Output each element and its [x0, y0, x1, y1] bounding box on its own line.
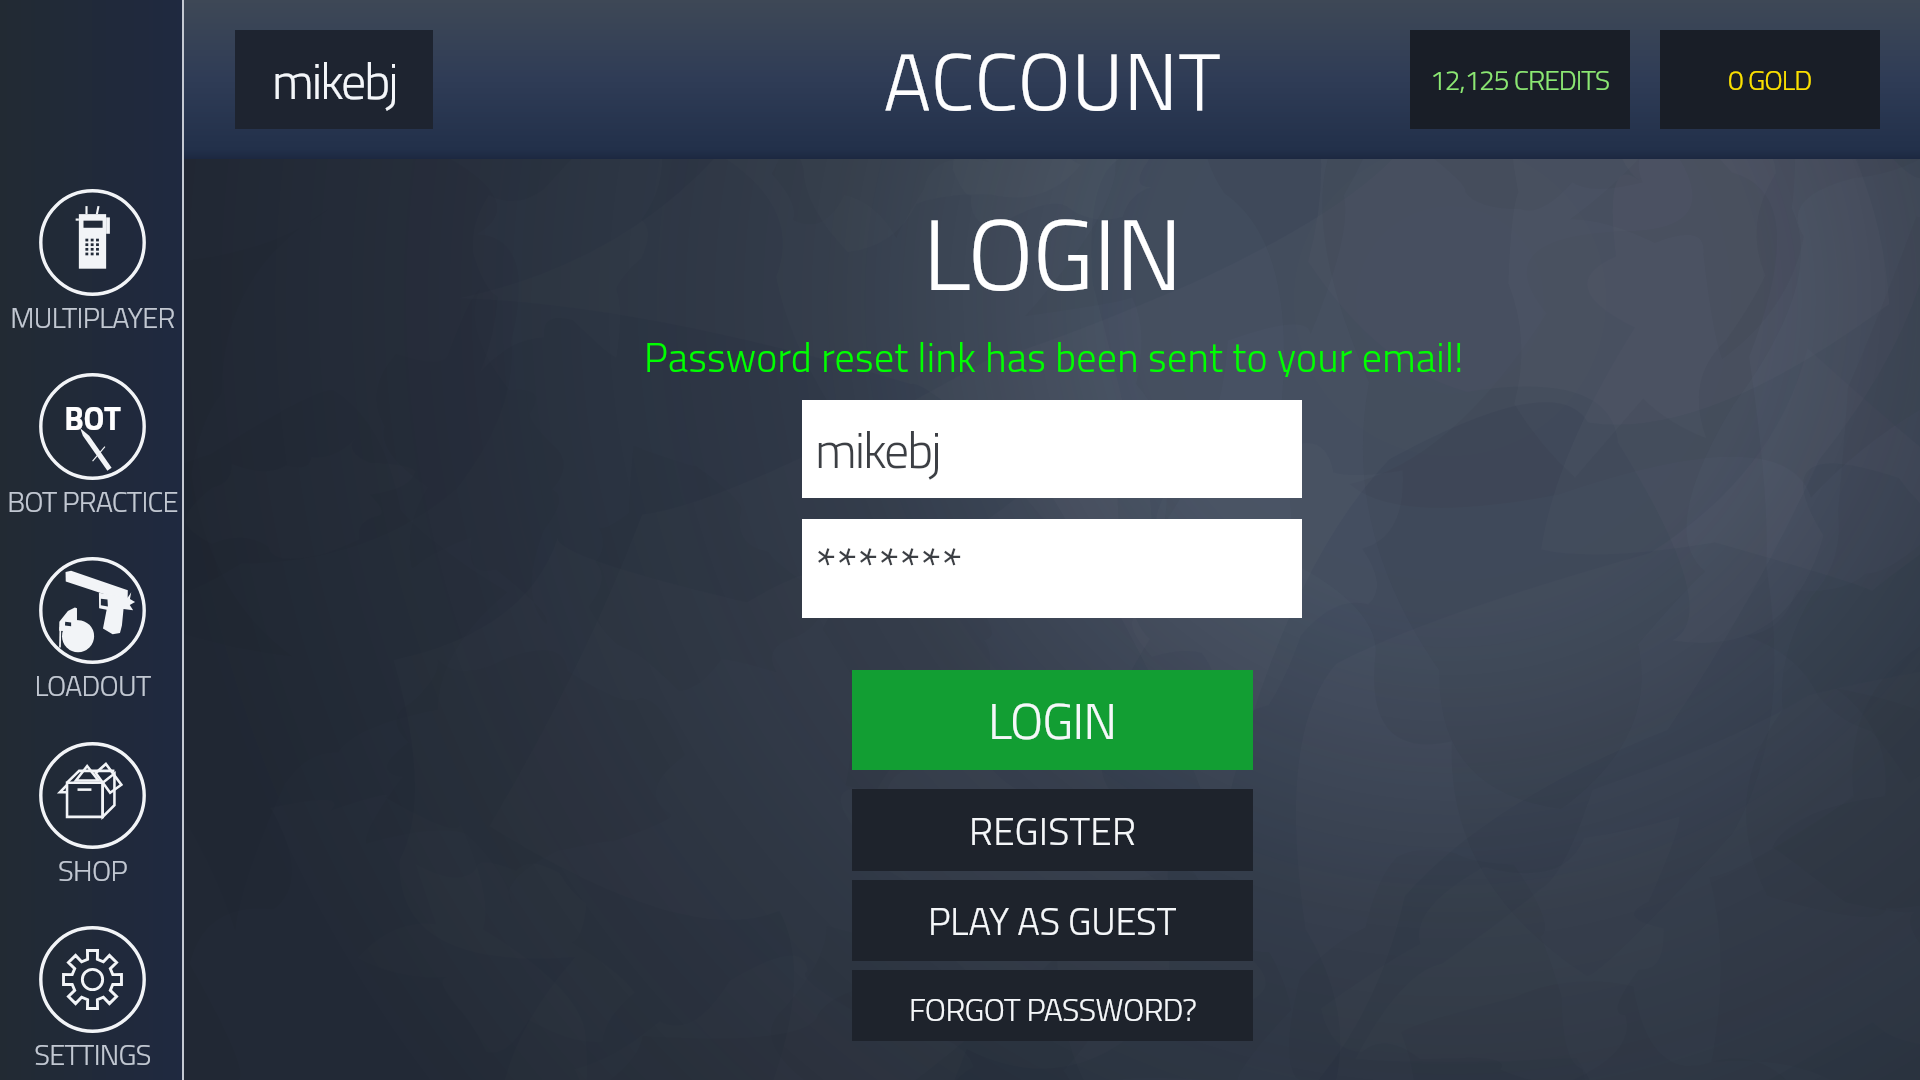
staticText: REGISTER [969, 801, 1137, 860]
button[interactable]: REGISTER [852, 789, 1253, 871]
button[interactable]: PLAY AS GUEST [852, 880, 1253, 961]
button[interactable]: FORGOT PASSWORD? [852, 970, 1253, 1041]
button[interactable]: SETTINGS [4, 926, 180, 1068]
button[interactable]: mikebj [235, 30, 433, 129]
staticText: ******* [815, 526, 963, 605]
button[interactable]: LOGIN [852, 670, 1253, 770]
staticText: SETTINGS [34, 1032, 151, 1068]
staticText: LOGIN [923, 178, 1182, 302]
button[interactable]: 12,125 CREDITS [1410, 30, 1630, 129]
button[interactable]: ******* [802, 519, 1302, 618]
staticText: FORGOT PASSWORD? [909, 985, 1197, 1034]
staticText: MULTIPLAYER [10, 295, 175, 331]
staticText: SHOP [58, 848, 127, 884]
staticText: mikebj [272, 42, 397, 118]
button[interactable]: LOADOUT [4, 557, 180, 699]
staticText: ACCOUNT [883, 19, 1222, 129]
button[interactable]: 0 GOLD [1660, 30, 1880, 129]
button[interactable]: SHOP [4, 742, 180, 884]
staticText: BOT PRACTICE [7, 479, 178, 515]
staticText: PLAY AS GUEST [928, 892, 1177, 950]
staticText: Password reset link has been sent to you… [644, 327, 1464, 377]
staticText: 12,125 CREDITS [1430, 58, 1610, 101]
staticText: LOGIN [988, 682, 1117, 758]
staticText: LOADOUT [34, 663, 151, 699]
staticText: BOT [64, 394, 121, 430]
button[interactable]: BOT PRACTICE [4, 373, 180, 515]
button[interactable]: mikebj [802, 400, 1302, 498]
staticText: mikebj [815, 411, 940, 487]
button[interactable]: MULTIPLAYER [4, 189, 180, 331]
staticText: 0 GOLD [1728, 58, 1812, 101]
